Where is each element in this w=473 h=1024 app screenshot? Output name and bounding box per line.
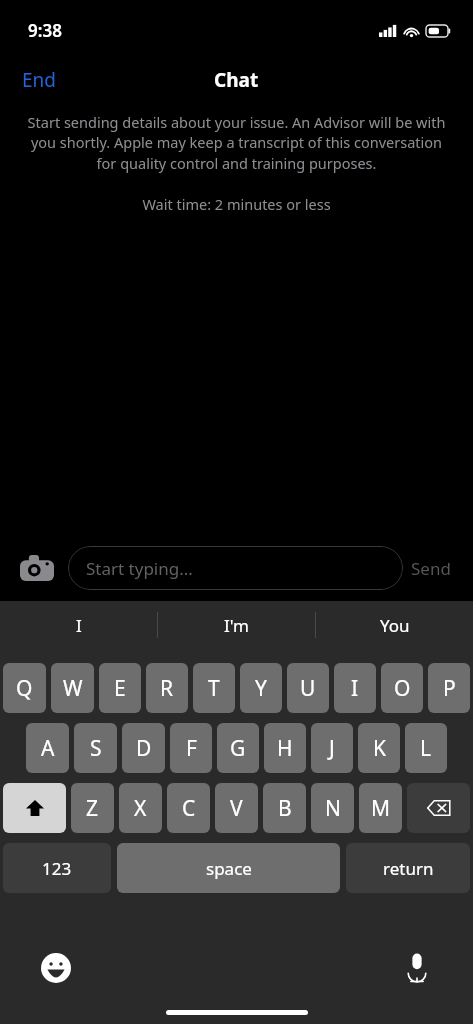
staticText: H (277, 734, 293, 763)
staticText: V (230, 794, 243, 823)
button[interactable]: Y (240, 663, 282, 713)
staticText: Chat (214, 67, 259, 93)
staticText: Y (255, 674, 267, 703)
staticText: End (22, 67, 56, 93)
button[interactable]: N (311, 783, 354, 833)
staticText: B (278, 794, 292, 823)
button[interactable]: You (316, 601, 473, 649)
button[interactable]: V (215, 783, 258, 833)
staticText: P (443, 674, 456, 703)
staticText: T (208, 674, 220, 703)
button[interactable]: Backspace (407, 783, 470, 833)
staticText: space (206, 857, 252, 880)
staticText: M (371, 794, 391, 823)
button[interactable]: Shift (3, 783, 66, 833)
button[interactable]: H (264, 723, 306, 773)
staticText: C (182, 794, 196, 823)
button[interactable]: Z (71, 783, 114, 833)
staticText: Z (86, 794, 99, 823)
button[interactable]: E (99, 663, 141, 713)
staticText: J (329, 734, 335, 763)
staticText: L (420, 734, 432, 763)
staticText: Wait time: 2 minutes or less (26, 194, 447, 214)
button[interactable]: I'm (158, 601, 315, 649)
button[interactable]: A (26, 723, 69, 773)
button[interactable]: Send (403, 549, 459, 588)
button[interactable]: T (193, 663, 235, 713)
staticText: A (41, 734, 55, 763)
button[interactable]: Dictation (397, 948, 437, 988)
button[interactable]: M (359, 783, 402, 833)
staticText: R (160, 674, 174, 703)
button[interactable]: U (287, 663, 329, 713)
button[interactable]: I (0, 601, 157, 649)
button[interactable]: F (170, 723, 212, 773)
button[interactable]: End (0, 61, 70, 99)
staticText: I'm (224, 614, 249, 637)
button[interactable]: C (167, 783, 210, 833)
staticText: G (230, 734, 246, 763)
button[interactable]: space (117, 843, 340, 893)
staticText: E (114, 674, 126, 703)
staticText: I (76, 614, 82, 637)
staticText: S (90, 734, 102, 763)
staticText: U (300, 674, 316, 703)
button[interactable]: Camera (14, 545, 60, 591)
button[interactable]: Q (3, 663, 46, 713)
button[interactable]: K (358, 723, 400, 773)
button[interactable]: B (263, 783, 306, 833)
button[interactable]: W (51, 663, 94, 713)
staticText: I (351, 674, 359, 703)
button[interactable]: O (381, 663, 423, 713)
staticText: N (325, 794, 341, 823)
staticText: W (63, 674, 83, 703)
button[interactable]: R (146, 663, 188, 713)
button[interactable]: D (122, 723, 165, 773)
button[interactable]: P (428, 663, 470, 713)
staticText: Send (411, 557, 451, 580)
staticText: 9:38 (28, 19, 62, 42)
button[interactable]: S (74, 723, 117, 773)
button[interactable]: 123 (3, 843, 111, 893)
staticText: O (394, 674, 411, 703)
button[interactable]: G (217, 723, 259, 773)
staticText: return (383, 857, 434, 880)
staticText: Q (16, 674, 33, 703)
button[interactable]: return (346, 843, 470, 893)
button[interactable]: I (334, 663, 376, 713)
button[interactable]: Start typing... (68, 546, 403, 590)
staticText: K (373, 734, 386, 763)
staticText: Start typing... (86, 557, 193, 580)
button[interactable]: J (311, 723, 353, 773)
staticText: You (380, 614, 410, 637)
staticText: X (134, 794, 147, 823)
button[interactable]: L (405, 723, 447, 773)
staticText: F (186, 734, 197, 763)
staticText: Start sending details about your issue. … (26, 112, 447, 174)
button[interactable]: Emoji (36, 948, 76, 988)
staticText: 123 (42, 857, 72, 880)
staticText: D (136, 734, 152, 763)
button[interactable]: X (119, 783, 162, 833)
